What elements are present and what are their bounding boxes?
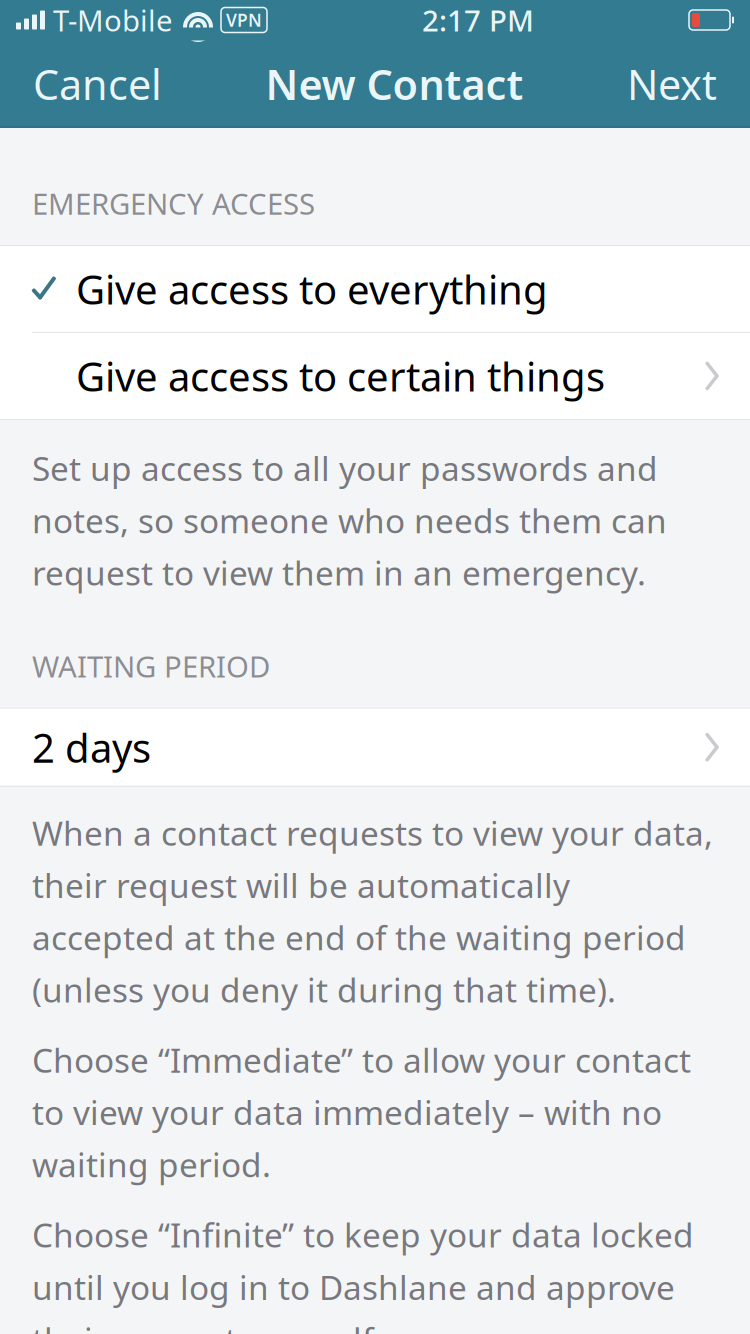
staticText: T-Mobile <box>53 0 173 39</box>
staticText: Give access to everything <box>76 262 548 315</box>
staticText: 2 days <box>32 721 151 774</box>
staticText: WAITING PERIOD <box>32 647 270 686</box>
staticText: EMERGENCY ACCESS <box>32 184 315 223</box>
staticText: Choose “Immediate” to allow your contact… <box>32 1038 691 1187</box>
button[interactable]: Cancel <box>17 47 178 121</box>
staticText: When a contact requests to view your dat… <box>32 811 713 1012</box>
button[interactable]: Give access to certain things <box>0 333 750 419</box>
staticText: New Contact <box>265 57 523 111</box>
staticText: Next <box>627 57 717 111</box>
staticText: Give access to certain things <box>76 349 605 402</box>
button[interactable]: Next <box>611 47 733 121</box>
staticText: Cancel <box>33 57 162 111</box>
staticText: Choose “Infinite” to keep your data lock… <box>32 1213 694 1334</box>
staticText: VPN <box>226 8 262 31</box>
button[interactable]: Give access to everything <box>0 246 750 332</box>
button[interactable]: 2 days <box>0 709 750 786</box>
staticText: Set up access to all your passwords and … <box>32 446 667 595</box>
staticText: 2:17 PM <box>422 0 534 39</box>
